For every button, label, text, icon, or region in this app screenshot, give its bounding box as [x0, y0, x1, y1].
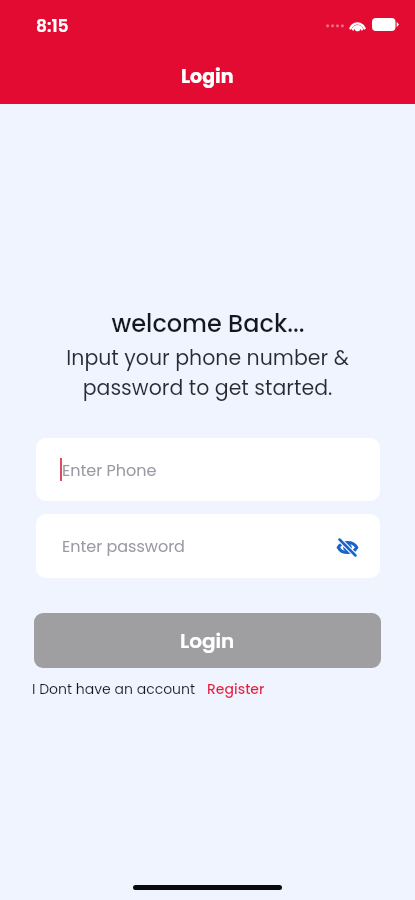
staticText: Enter password [62, 535, 185, 557]
staticText: welcome Back... [111, 307, 305, 341]
button[interactable]: Enter Phone [36, 438, 380, 501]
staticText: Register [207, 679, 265, 699]
button[interactable]: Enter password [36, 514, 380, 578]
staticText: Login [181, 63, 234, 90]
staticText: I Dont have an account [32, 679, 196, 699]
button[interactable]: Show password [330, 530, 364, 564]
staticText: Enter Phone [62, 459, 157, 481]
button[interactable]: Register [207, 679, 265, 699]
button[interactable]: Login [34, 613, 381, 668]
staticText: 8:15 [36, 14, 69, 38]
staticText: Input your phone number & password to ge… [66, 343, 349, 402]
staticText: Login [180, 627, 235, 655]
